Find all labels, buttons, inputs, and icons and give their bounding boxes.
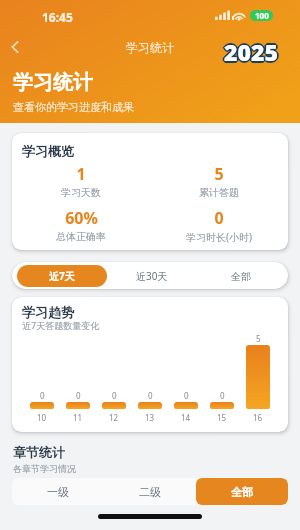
staticText: 近7天 bbox=[49, 269, 75, 283]
staticText: 5 bbox=[214, 163, 224, 185]
staticText: 学习时长(小时) bbox=[186, 230, 252, 244]
staticText: 0 bbox=[184, 390, 189, 401]
staticText: 全部 bbox=[231, 270, 251, 283]
staticText: 近30天 bbox=[136, 269, 168, 283]
staticText: 0 bbox=[40, 390, 45, 401]
staticText: 2025 bbox=[225, 37, 279, 68]
staticText: 60% bbox=[65, 207, 98, 229]
staticText: 学习天数 bbox=[61, 186, 101, 199]
button[interactable]: 近7天 bbox=[17, 265, 107, 287]
staticText: 2025 bbox=[225, 35, 279, 66]
staticText: 0 bbox=[220, 390, 225, 401]
staticText: 2025 bbox=[225, 36, 279, 67]
staticText: 2025 bbox=[226, 36, 280, 67]
staticText: 100 bbox=[255, 10, 269, 21]
staticText: 16 bbox=[253, 412, 263, 423]
staticText: 总体正确率 bbox=[56, 230, 106, 243]
staticText: 学习概览 bbox=[22, 143, 74, 159]
staticText: 2025 bbox=[224, 36, 278, 67]
button[interactable]: Back bbox=[0, 32, 30, 62]
staticText: 近7天答题数量变化 bbox=[22, 319, 100, 331]
staticText: 0 bbox=[112, 390, 117, 401]
staticText: 一级 bbox=[47, 485, 69, 499]
staticText: 2025 bbox=[223, 37, 277, 68]
staticText: 查看你的学习进度和成果 bbox=[13, 100, 134, 114]
staticText: 13 bbox=[145, 412, 155, 423]
button[interactable]: 一级 bbox=[12, 478, 104, 505]
staticText: 10 bbox=[37, 412, 47, 423]
staticText: 1 bbox=[76, 163, 86, 185]
button[interactable]: 全部 bbox=[196, 478, 288, 505]
staticText: 11 bbox=[73, 412, 83, 423]
staticText: 学习统计 bbox=[126, 40, 174, 55]
staticText: 0 bbox=[76, 390, 81, 401]
staticText: 章节统计 bbox=[13, 444, 65, 460]
button[interactable]: 近30天 bbox=[107, 265, 196, 287]
staticText: 15 bbox=[217, 412, 227, 423]
staticText: 2025 bbox=[224, 37, 278, 68]
button[interactable]: 二级 bbox=[104, 478, 196, 505]
staticText: 2025 bbox=[223, 36, 277, 67]
staticText: 2025 bbox=[224, 35, 278, 66]
staticText: 14 bbox=[181, 412, 191, 423]
staticText: 2025 bbox=[224, 38, 278, 69]
staticText: 2025 bbox=[222, 36, 276, 67]
staticText: 2025 bbox=[224, 34, 278, 65]
staticText: 16:45 bbox=[42, 9, 73, 25]
staticText: 0 bbox=[214, 207, 224, 229]
staticText: 0 bbox=[148, 390, 153, 401]
staticText: 累计答题 bbox=[199, 186, 239, 199]
staticText: 各章节学习情况 bbox=[13, 463, 76, 474]
staticText: 全部 bbox=[231, 485, 253, 499]
staticText: 5 bbox=[256, 333, 261, 344]
staticText: 学习统计 bbox=[13, 70, 93, 95]
button[interactable]: 全部 bbox=[196, 265, 285, 287]
staticText: 2025 bbox=[223, 35, 277, 66]
staticText: 二级 bbox=[139, 485, 161, 499]
staticText: 学习趋势 bbox=[22, 304, 74, 320]
staticText: 12 bbox=[109, 412, 119, 423]
